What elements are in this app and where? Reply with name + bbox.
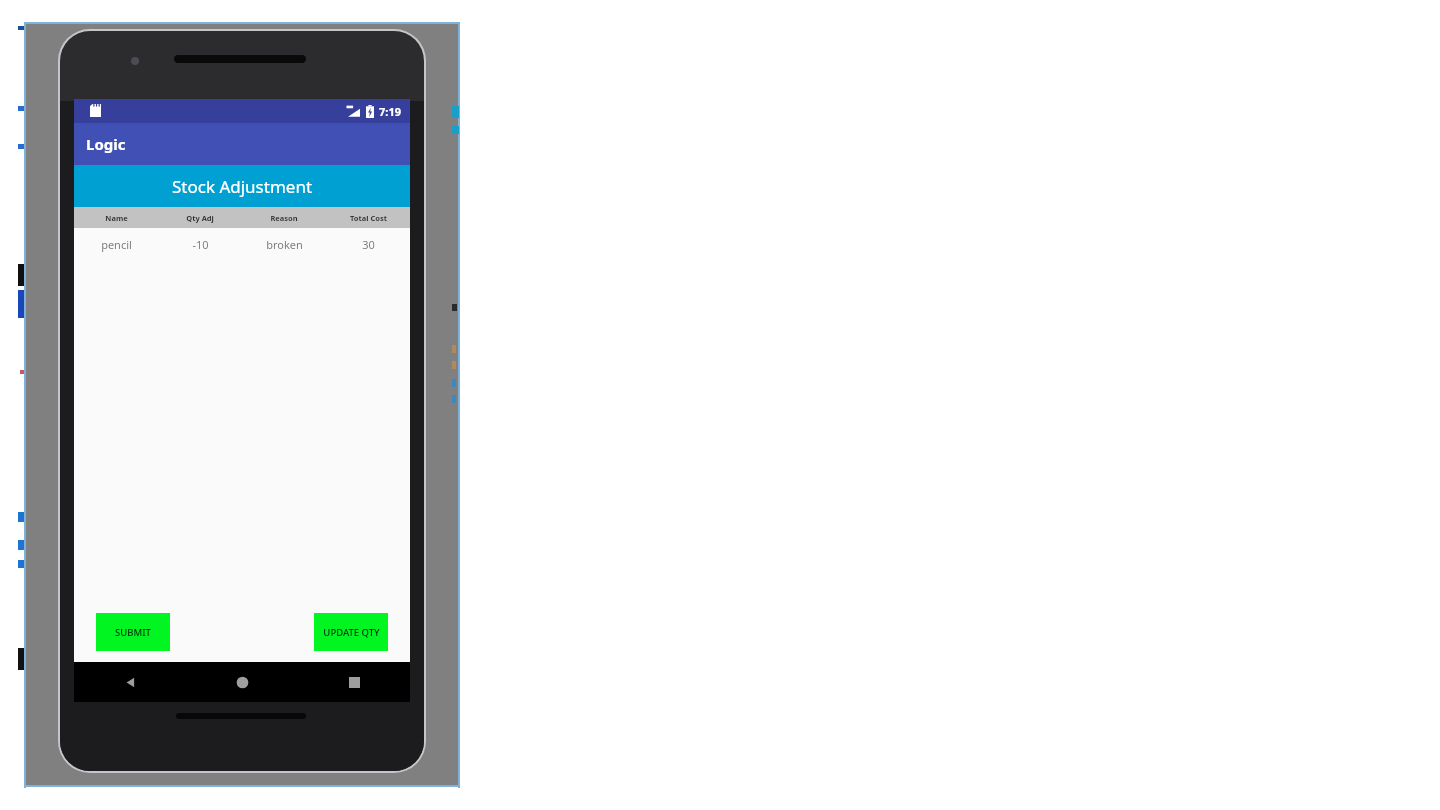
staticText: Qty Adj [186,213,214,223]
staticText: SUBMIT [115,626,151,639]
staticText: broken [266,237,303,252]
staticText: 30 [362,237,375,252]
staticText: Stock Adjustment [172,175,313,198]
button[interactable]: Recent apps [298,662,410,702]
button[interactable]: pencil [74,228,410,260]
staticText: Logic [86,134,126,154]
button[interactable]: SUBMIT [96,613,170,651]
staticText: UPDATE QTY [323,626,380,639]
button[interactable]: Back [74,662,186,702]
staticText: Total Cost [350,213,387,223]
staticText: pencil [101,237,132,252]
staticText: 7:19 [379,104,401,119]
staticText: Name [105,213,128,223]
button[interactable]: Home [186,662,298,702]
button[interactable]: UPDATE QTY [314,613,388,651]
staticText: -10 [192,237,209,252]
button[interactable]: Stock Adjustment [74,165,410,207]
button[interactable]: Logic [74,123,410,165]
staticText: Reason [270,213,298,223]
